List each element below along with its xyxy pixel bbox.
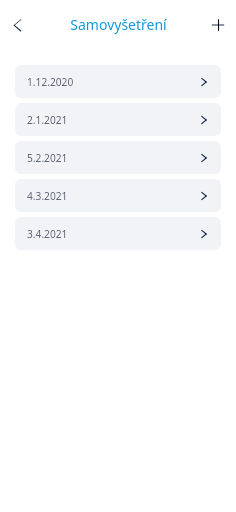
staticText: 2.1.2021 (27, 113, 68, 127)
button[interactable]: 1.12.2020 (15, 65, 221, 98)
button[interactable]: 3.4.2021 (15, 217, 221, 250)
staticText: 5.2.2021 (27, 151, 68, 165)
staticText: Samovyšetření (70, 15, 167, 34)
button[interactable]: 5.2.2021 (15, 141, 221, 174)
staticText: 3.4.2021 (27, 227, 68, 241)
staticText: 1.12.2020 (27, 75, 74, 89)
button[interactable]: 2.1.2021 (15, 103, 221, 136)
button[interactable]: 4.3.2021 (15, 179, 221, 212)
staticText: 4.3.2021 (27, 189, 68, 203)
button[interactable]: Back (5, 13, 29, 37)
button[interactable]: Add (206, 13, 230, 37)
